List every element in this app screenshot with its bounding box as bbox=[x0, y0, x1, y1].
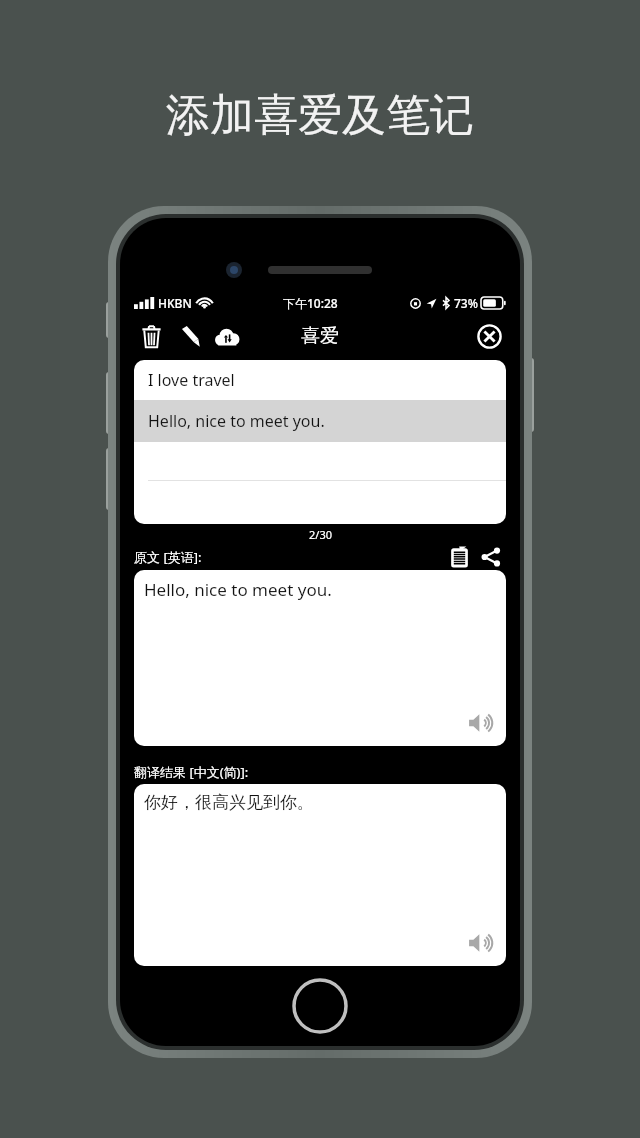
button[interactable]: Edit bbox=[172, 319, 206, 353]
button[interactable]: I love travel bbox=[134, 360, 506, 400]
button[interactable]: Hello, nice to meet you. bbox=[134, 570, 506, 746]
staticText: 添加喜爱及笔记 bbox=[166, 88, 474, 143]
staticText: Hello, nice to meet you. bbox=[144, 578, 332, 601]
staticText: HKBN bbox=[158, 295, 192, 311]
button[interactable]: Hello, nice to meet you. bbox=[134, 400, 506, 442]
button[interactable]: 你好，很高兴见到你。 bbox=[134, 784, 506, 966]
button[interactable]: Close bbox=[472, 319, 506, 353]
staticText: 你好，很高兴见到你。 bbox=[144, 792, 314, 813]
staticText: 2/30 bbox=[309, 527, 332, 542]
button[interactable]: Sync bbox=[210, 319, 244, 353]
staticText: Hello, nice to meet you. bbox=[148, 410, 325, 432]
button[interactable]: Speak bbox=[464, 706, 498, 740]
staticText: 原文 [英语]: bbox=[134, 548, 202, 566]
staticText: I love travel bbox=[148, 369, 235, 391]
button[interactable]: Notes bbox=[444, 544, 474, 570]
button[interactable]: Share bbox=[476, 544, 506, 570]
staticText: 73% bbox=[454, 295, 478, 311]
button[interactable]: Home bbox=[292, 978, 348, 1034]
button[interactable]: Speak bbox=[464, 926, 498, 960]
staticText: 下午10:28 bbox=[283, 295, 338, 311]
staticText: 喜爱 bbox=[301, 324, 339, 348]
staticText: 翻译结果 [中文(简)]: bbox=[134, 763, 249, 781]
button[interactable]: Delete bbox=[134, 319, 168, 353]
